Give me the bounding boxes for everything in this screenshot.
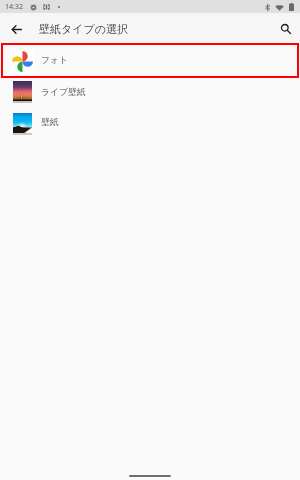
button[interactable]: Back bbox=[4, 17, 28, 41]
button[interactable]: フォト bbox=[0, 45, 300, 78]
staticText: 壁紙 bbox=[41, 117, 59, 128]
staticText: 14:32 bbox=[5, 2, 23, 12]
staticText: 壁紙タイプの選択 bbox=[39, 22, 129, 36]
staticText: フォト bbox=[41, 55, 69, 66]
button[interactable]: ライブ壁紙 bbox=[0, 78, 300, 108]
staticText: ライブ壁紙 bbox=[41, 87, 86, 98]
button[interactable]: 壁紙 bbox=[0, 108, 300, 138]
button[interactable]: Search bbox=[274, 17, 298, 41]
